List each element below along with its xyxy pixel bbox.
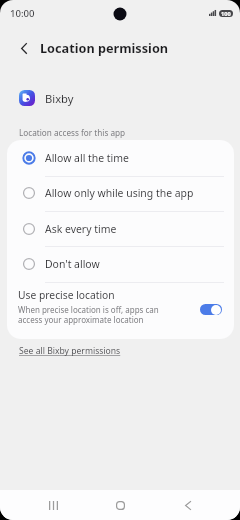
button[interactable]: Use precise location toggle bbox=[200, 304, 222, 315]
button[interactable]: Back bbox=[10, 35, 37, 62]
button[interactable]: Ask every time bbox=[7, 211, 234, 246]
staticText: Use precise location bbox=[18, 288, 115, 302]
staticText: Allow only while using the app bbox=[45, 186, 194, 200]
staticText: Location permission bbox=[40, 39, 169, 56]
staticText: When precise location is off, apps can a… bbox=[18, 304, 159, 326]
button[interactable]: Back bbox=[170, 490, 206, 520]
button[interactable]: See all Bixby permissions bbox=[19, 345, 121, 357]
button[interactable]: Don't allow bbox=[7, 246, 234, 281]
staticText: Ask every time bbox=[45, 222, 117, 236]
button[interactable]: Allow all the time bbox=[7, 140, 234, 175]
button[interactable]: Use precise location bbox=[7, 282, 234, 339]
staticText: Allow all the time bbox=[45, 151, 129, 165]
button[interactable]: Allow only while using the app bbox=[7, 175, 234, 210]
staticText: 10:00 bbox=[10, 7, 35, 20]
button[interactable]: Recent apps bbox=[35, 490, 71, 520]
staticText: Location access for this app bbox=[19, 127, 126, 138]
staticText: Bixby bbox=[45, 91, 74, 106]
staticText: Don't allow bbox=[45, 257, 100, 271]
staticText: 100 bbox=[221, 10, 231, 17]
button[interactable]: Home bbox=[102, 490, 138, 520]
button[interactable]: Bixby bbox=[0, 84, 240, 112]
